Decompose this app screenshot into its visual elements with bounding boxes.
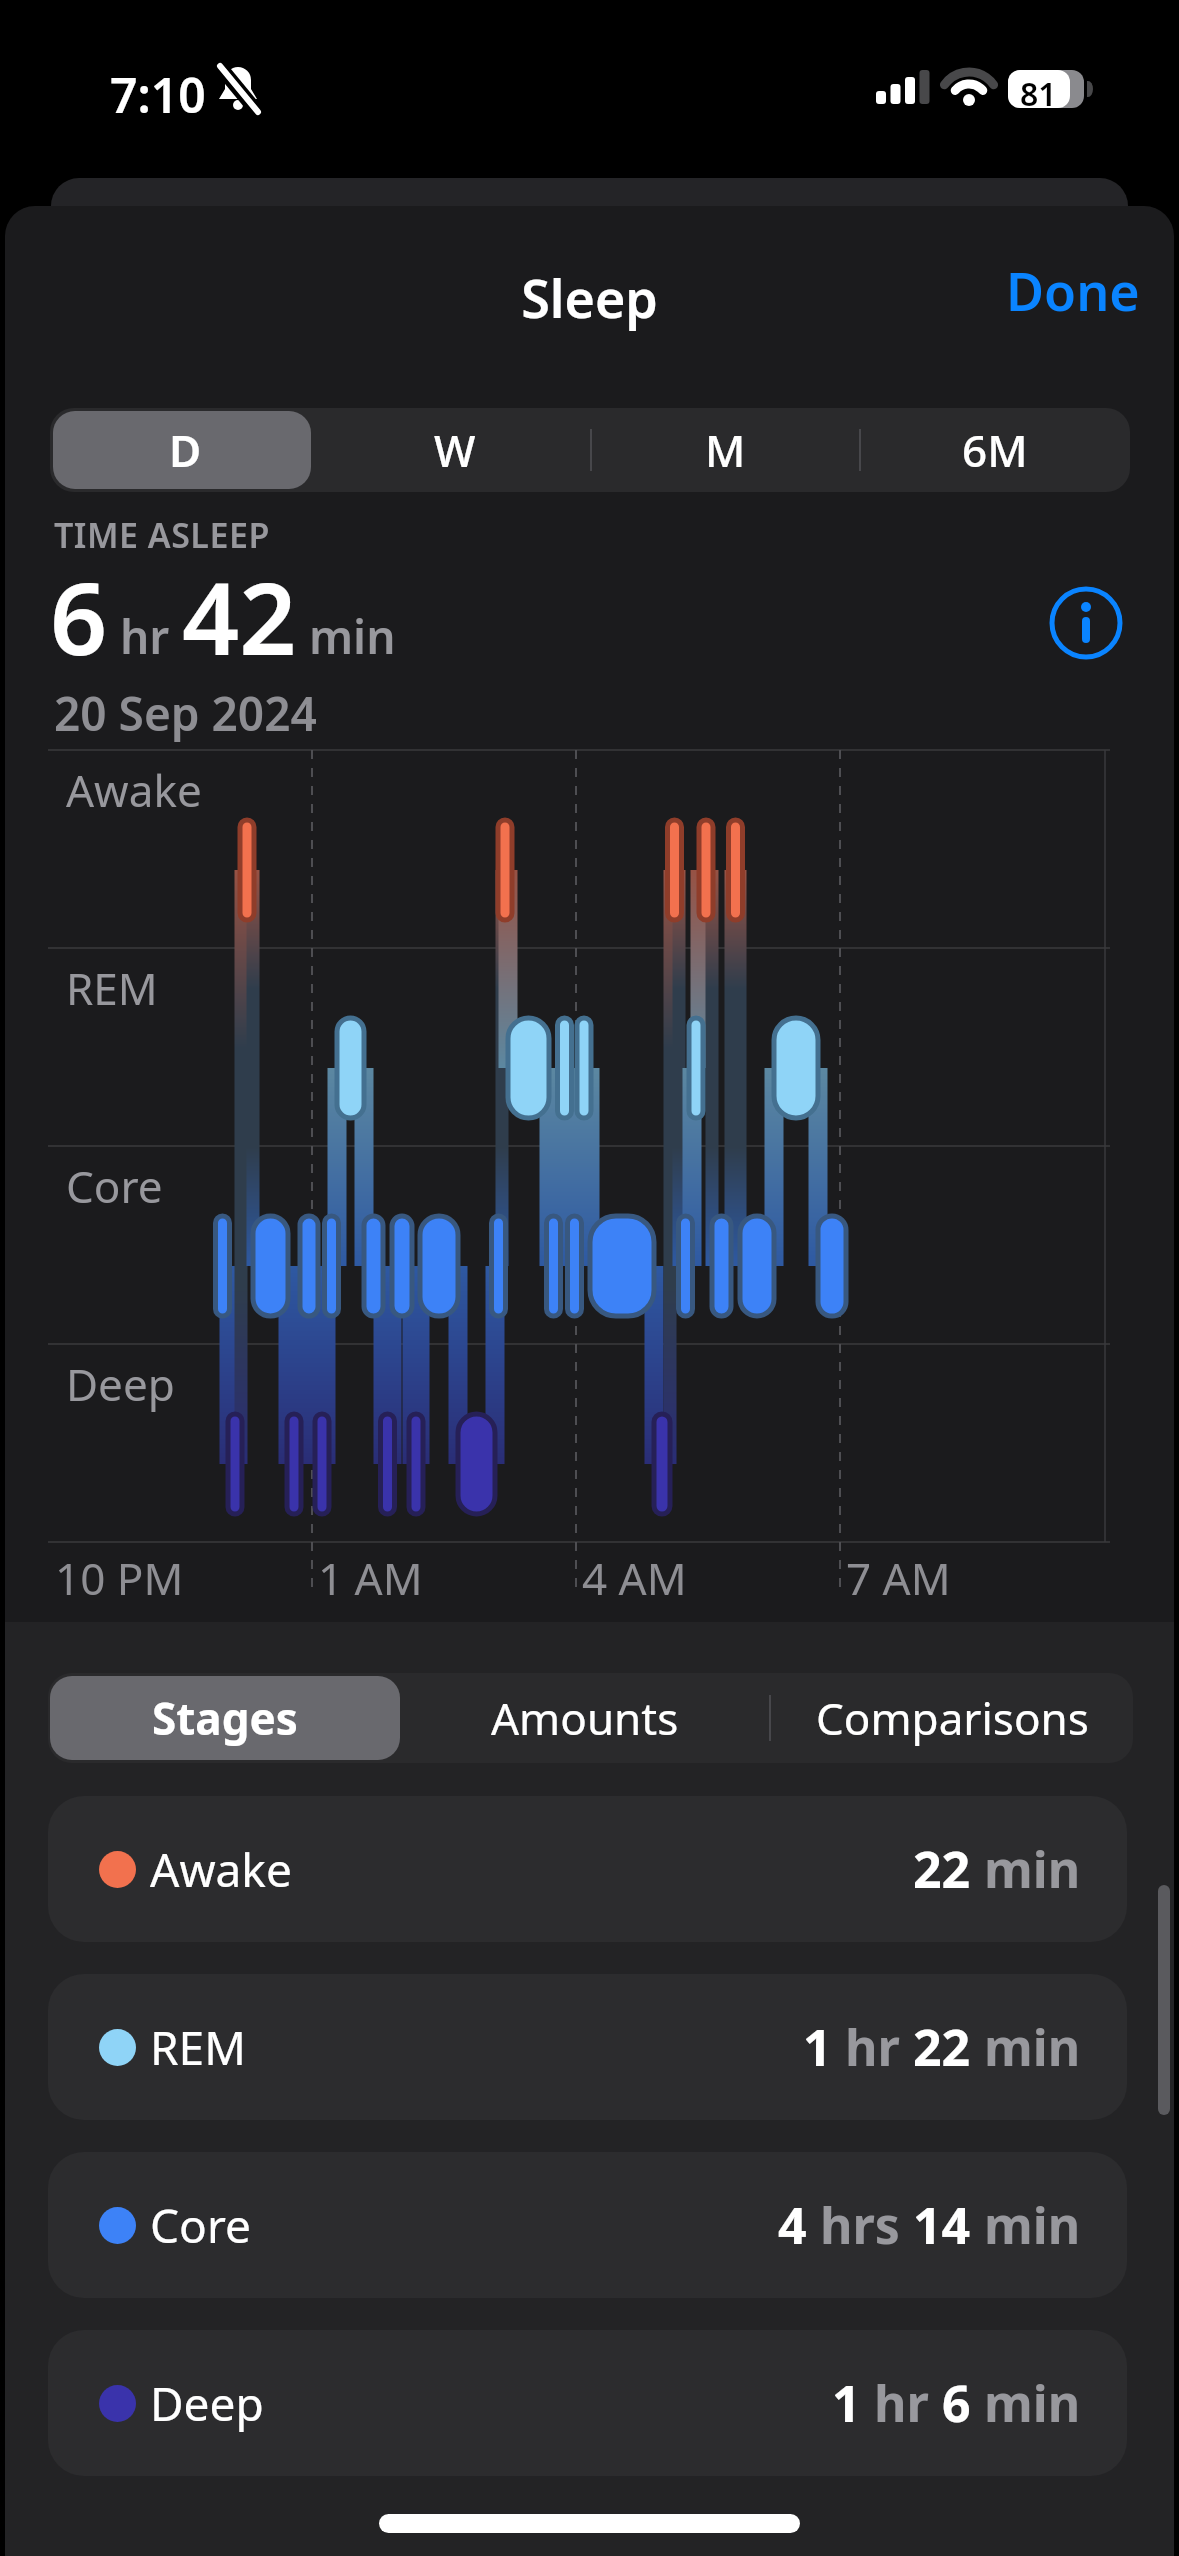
button[interactable]: Stages	[50, 1676, 400, 1760]
staticText: hr	[832, 2013, 913, 2081]
staticText: Sleep	[0, 262, 1179, 333]
staticText: Core	[66, 1156, 163, 1216]
staticText: Awake	[150, 1838, 292, 1901]
staticText: hrs	[807, 2191, 913, 2259]
staticText: 1 AM	[318, 1548, 423, 1608]
staticText: Comparisons	[816, 1688, 1089, 1748]
staticText: min	[297, 605, 396, 668]
staticText: 7:10	[110, 62, 206, 127]
button[interactable]: Amounts	[400, 1676, 769, 1760]
button[interactable]: W	[320, 408, 590, 492]
staticText: 1	[803, 2013, 832, 2081]
button[interactable]: Comparisons	[771, 1676, 1133, 1760]
staticText: Deep	[150, 2372, 264, 2435]
staticText: min	[971, 2191, 1081, 2259]
button[interactable]: 6M	[860, 408, 1130, 492]
button[interactable]: Done	[990, 252, 1140, 328]
staticText: 6	[942, 2369, 971, 2437]
staticText: 22	[913, 2013, 971, 2081]
staticText: 81	[1020, 72, 1057, 116]
staticText: 4	[778, 2191, 807, 2259]
button[interactable]: Core	[48, 2152, 1127, 2298]
staticText: Done	[1006, 255, 1140, 326]
staticText: 4 AM	[582, 1548, 687, 1608]
staticText: TIME ASLEEP	[54, 512, 270, 558]
staticText: 10 PM	[55, 1548, 184, 1608]
staticText: Amounts	[491, 1688, 679, 1748]
staticText: min	[971, 2369, 1081, 2437]
staticText: hr	[108, 605, 182, 668]
staticText: 6	[50, 548, 108, 684]
staticText: REM	[150, 2016, 246, 2079]
staticText: 1	[832, 2369, 861, 2437]
staticText: min	[971, 1835, 1081, 1903]
staticText: M	[705, 420, 746, 480]
button[interactable]: Deep	[48, 2330, 1127, 2476]
staticText: Stages	[152, 1688, 298, 1748]
button[interactable]: REM	[48, 1974, 1127, 2120]
staticText: W	[434, 420, 476, 480]
button[interactable]: D	[50, 408, 320, 492]
staticText: REM	[66, 958, 158, 1018]
staticText: Core	[150, 2194, 251, 2257]
staticText: D	[169, 420, 202, 480]
staticText: 6M	[962, 420, 1028, 480]
staticText: min	[971, 2013, 1081, 2081]
button[interactable]: Awake	[48, 1796, 1127, 1942]
staticText: 22	[913, 1835, 971, 1903]
staticText: 42	[182, 548, 297, 684]
staticText: 20 Sep 2024	[54, 682, 317, 745]
button[interactable]: M	[590, 408, 860, 492]
button[interactable]	[1048, 585, 1124, 661]
staticText: Awake	[66, 760, 202, 820]
staticText: Deep	[66, 1354, 175, 1414]
staticText: 14	[913, 2191, 971, 2259]
staticText: hr	[861, 2369, 942, 2437]
staticText: 7 AM	[846, 1548, 951, 1608]
